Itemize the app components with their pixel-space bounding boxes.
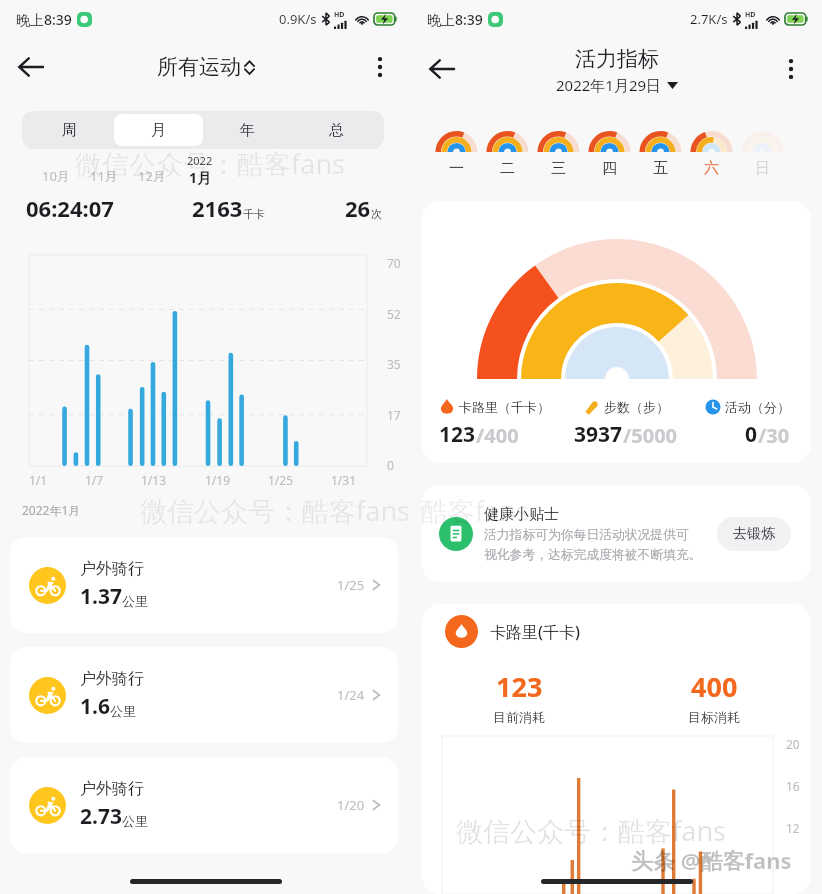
staticText: 26 [345,193,371,223]
staticText: 16 [786,778,800,794]
button[interactable]: 六 [686,131,737,178]
staticText: 11月 [90,167,118,185]
button[interactable]: Back [8,44,54,90]
staticText: 户外骑行 [80,669,144,689]
staticText: 1月 [189,168,212,187]
staticText: 四 [602,159,617,178]
staticText: 健康小贴士 [484,505,559,524]
staticText: 一 [449,159,464,178]
staticText: HD [334,10,345,20]
staticText: 35 [387,356,401,372]
staticText: 月 [151,121,166,140]
button[interactable]: 户外骑行 [10,647,398,743]
staticText: 2022 [187,153,213,168]
button[interactable]: 一 [431,131,482,178]
staticText: 目前消耗 [493,709,545,725]
button[interactable]: 总 [292,114,381,146]
button[interactable]: 二 [482,131,533,178]
staticText: 晚上8:39 [427,10,483,29]
staticText: 1/13 [141,472,167,488]
button[interactable]: 户外骑行 [10,537,398,633]
staticText: 1/1 [29,472,48,488]
button[interactable]: 周 [25,114,114,146]
staticText: 123 [496,668,543,705]
staticText: 卡路里(千卡) [490,621,580,643]
staticText: 二 [500,159,515,178]
button[interactable]: 四 [584,131,635,178]
button[interactable]: 五 [635,131,686,178]
staticText: 52 [387,306,401,322]
button[interactable]: 所有运动 [157,54,255,80]
staticText: 2.73 [80,802,122,831]
staticText: 年 [240,121,255,140]
staticText: 酷客fans [421,492,530,529]
staticText: 0 [745,420,758,449]
staticText: 去锻炼 [733,525,775,543]
staticText: 户外骑行 [80,559,144,579]
staticText: 3937 [574,420,623,449]
staticText: 周 [62,121,77,140]
staticText: /30 [758,422,790,449]
button[interactable]: Back [419,46,465,92]
staticText: 1/31 [331,472,357,488]
staticText: 微信公众号：酷客fans [456,812,727,849]
staticText: 活动（分） [725,399,790,415]
staticText: 步数（步） [604,399,669,415]
staticText: 五 [653,159,668,178]
staticText: 70 [387,255,401,271]
staticText: /400 [476,422,519,449]
button[interactable]: 户外骑行 [10,757,398,853]
staticText: 所有运动 [157,54,241,80]
staticText: 微信公众号：酷客fans [75,145,346,182]
staticText: 户外骑行 [80,779,144,799]
staticText: 2.7K/s [690,10,728,28]
staticText: 公里 [122,813,148,829]
staticText: 三 [551,159,566,178]
staticText: 1/20 [337,796,365,814]
staticText: 17 [387,407,401,423]
staticText: 2022年1月29日 [556,75,662,95]
staticText: 1.6 [80,692,110,721]
staticText: 0 [387,457,394,473]
staticText: 20 [786,736,800,752]
button[interactable]: More options [357,44,403,90]
staticText: 六 [704,159,719,178]
button[interactable]: More options [768,46,814,92]
staticText: /5000 [623,422,678,449]
staticText: 日 [755,159,770,178]
staticText: 400 [691,668,738,705]
staticText: 12 [786,820,800,836]
staticText: 1/25 [268,472,294,488]
staticText: 活力指标可为你每日活动状况提供可 视化参考，达标完成度将被不断填充。 [484,527,702,563]
button[interactable]: 年 [203,114,292,146]
staticText: 卡路里（千卡） [459,399,550,415]
button[interactable]: 去锻炼 [717,517,791,551]
staticText: 0.9K/s [279,10,317,28]
button[interactable]: 月 [114,114,203,146]
staticText: 1.37 [80,582,122,611]
staticText: 123 [439,420,476,449]
staticText: 公里 [122,593,148,609]
staticText: 微信公众号：酷客fans [140,492,411,529]
staticText: 2163 [192,193,243,223]
staticText: 12月 [138,167,166,185]
button[interactable]: 日 [737,131,788,178]
staticText: 目标消耗 [688,709,740,725]
staticText: 公里 [110,703,136,719]
staticText: 活力指标 [575,46,659,72]
staticText: 千卡 [243,207,265,221]
staticText: 1/7 [85,472,104,488]
button[interactable]: 三 [533,131,584,178]
staticText: 1/24 [337,686,365,704]
staticText: 总 [329,121,344,140]
staticText: 06:24:07 [26,193,114,223]
staticText: 10月 [42,167,70,185]
staticText: 次 [371,207,382,221]
staticText: 头条 @酷客fans [631,845,792,875]
staticText: 2022年1月 [22,502,81,518]
staticText: 1/25 [337,576,365,594]
button[interactable]: 2022年1月29日 [556,75,678,95]
staticText: HD [745,10,756,20]
staticText: 晚上8:39 [16,10,72,29]
staticText: 1/19 [205,472,231,488]
